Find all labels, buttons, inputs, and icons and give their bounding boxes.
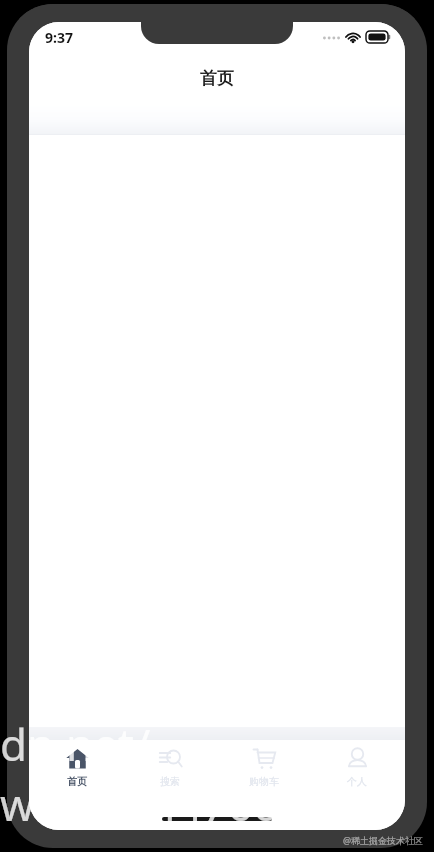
button[interactable]: 搜索	[124, 740, 216, 796]
button[interactable]: 个人	[311, 740, 403, 796]
staticText: @稀土掘金技术社区	[343, 834, 424, 846]
other: 个人	[345, 746, 370, 771]
staticText: 首页	[200, 68, 234, 89]
staticText: 9:37	[45, 28, 73, 47]
staticText: dn.net/weixin_44766643	[0, 714, 434, 834]
staticText: 购物车	[249, 775, 279, 788]
staticText: 搜索	[160, 775, 180, 788]
other: 首页	[65, 746, 90, 771]
staticText: 个人	[347, 775, 367, 788]
staticText: 首页	[67, 775, 87, 788]
other: 搜索	[158, 746, 183, 771]
button[interactable]: 首页	[31, 740, 123, 796]
button[interactable]: 购物车	[218, 740, 310, 796]
other: 购物车	[252, 746, 277, 771]
